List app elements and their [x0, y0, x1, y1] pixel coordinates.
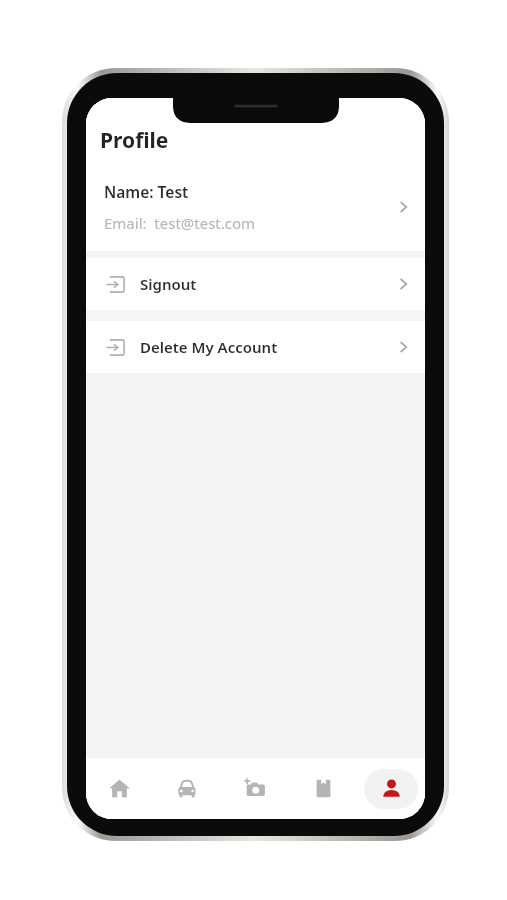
- button[interactable]: Home: [86, 758, 153, 819]
- button[interactable]: Cars: [153, 758, 221, 819]
- staticText: Signout: [140, 274, 397, 294]
- button[interactable]: Signout: [86, 258, 425, 310]
- staticText: Delete My Account: [140, 337, 397, 357]
- button[interactable]: Delete My Account: [86, 321, 425, 373]
- button[interactable]: Profile: [357, 758, 425, 819]
- staticText: Email: test@test.com: [104, 213, 256, 233]
- staticText: Name: Test: [104, 181, 189, 202]
- button[interactable]: Saved: [289, 758, 357, 819]
- button[interactable]: Add photo: [221, 758, 289, 819]
- button[interactable]: Name: Test: [86, 175, 425, 251]
- staticText: Profile: [100, 126, 169, 155]
